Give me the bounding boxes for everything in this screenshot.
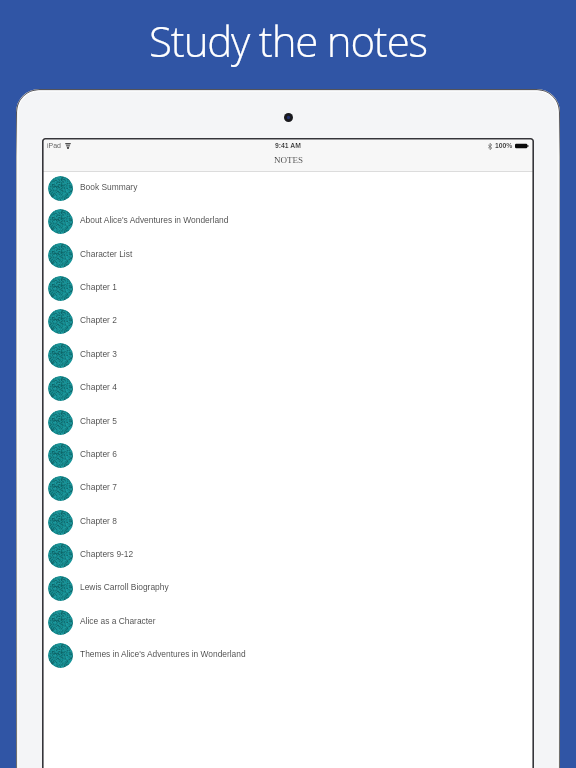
button[interactable]: Chapter 7	[42, 472, 534, 505]
staticText: Character List	[80, 249, 133, 258]
staticText: Book Summary	[80, 182, 138, 191]
staticText: Chapter 6	[80, 449, 117, 458]
staticText: Study the notes	[0, 12, 576, 69]
staticText: Chapter 3	[80, 349, 117, 358]
staticText: Lewis Carroll Biography	[80, 582, 169, 591]
button[interactable]: Chapter 4	[42, 372, 534, 405]
staticText: Chapter 2	[80, 315, 117, 324]
other: Battery full	[515, 143, 529, 149]
staticText: Chapter 8	[80, 516, 117, 525]
staticText: iPad	[47, 142, 62, 150]
button[interactable]: Chapter 3	[42, 339, 534, 372]
staticText: Chapter 5	[80, 416, 117, 425]
button[interactable]: Lewis Carroll Biography	[42, 572, 534, 605]
button[interactable]: Chapters 9-12	[42, 539, 534, 572]
button[interactable]: Chapter 8	[42, 506, 534, 539]
button[interactable]: Chapter 6	[42, 439, 534, 472]
staticText: About Alice's Adventures in Wonderland	[80, 215, 229, 224]
staticText: 9:41 AM	[275, 142, 301, 150]
button[interactable]: Chapter 1	[42, 272, 534, 305]
button[interactable]: Themes in Alice's Adventures in Wonderla…	[42, 639, 534, 672]
staticText: Themes in Alice's Adventures in Wonderla…	[80, 649, 246, 658]
button[interactable]: Character List	[42, 239, 534, 272]
button[interactable]: Alice as a Character	[42, 606, 534, 639]
staticText: Chapter 4	[80, 382, 117, 391]
other: Bluetooth	[488, 143, 492, 150]
staticText: Alice as a Character	[80, 616, 156, 625]
button[interactable]: Chapter 5	[42, 406, 534, 439]
staticText: NOTES	[274, 155, 303, 165]
staticText: 100%	[495, 142, 513, 150]
other: Wi-Fi signal	[65, 143, 71, 149]
button[interactable]: About Alice's Adventures in Wonderland	[42, 205, 534, 238]
button[interactable]: Book Summary	[42, 172, 534, 205]
staticText: Chapter 1	[80, 282, 117, 291]
staticText: Chapter 7	[80, 482, 117, 491]
button[interactable]: Chapter 2	[42, 305, 534, 338]
staticText: Chapters 9-12	[80, 549, 134, 558]
